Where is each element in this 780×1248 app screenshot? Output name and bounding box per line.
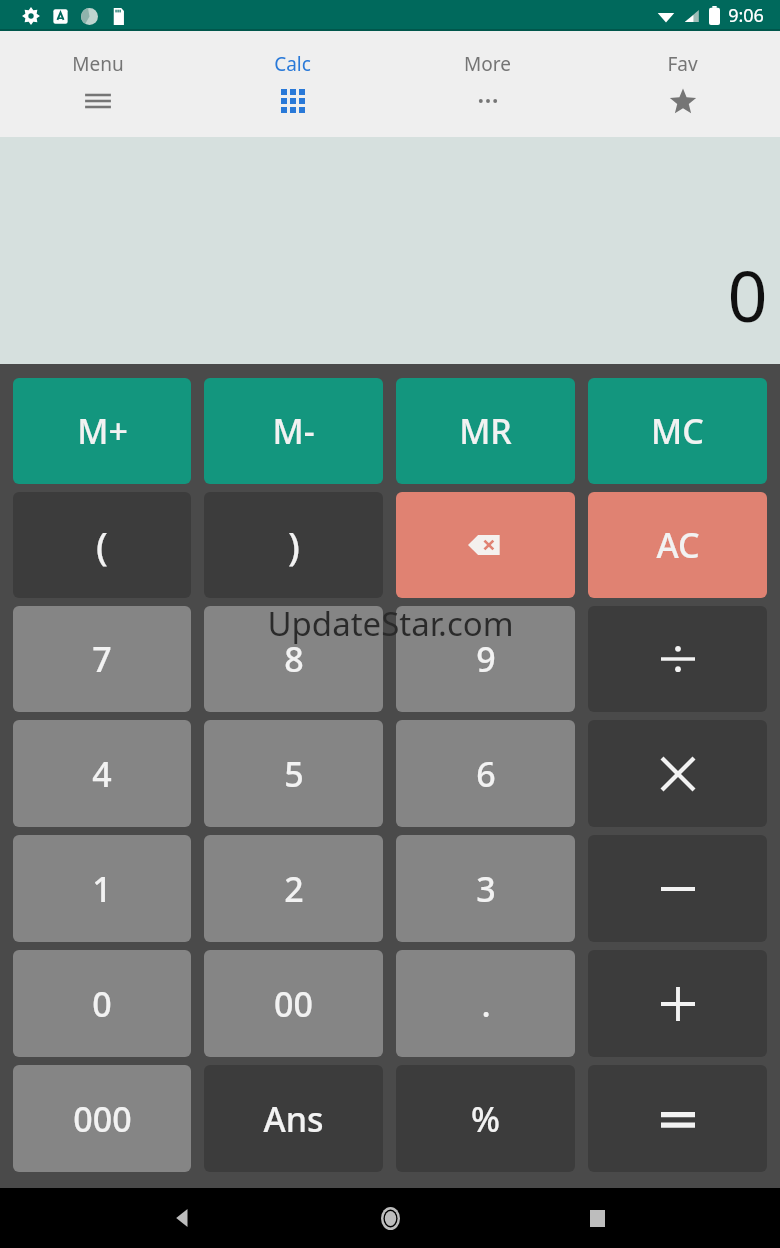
button[interactable]: 1 — [13, 835, 191, 942]
button[interactable]: 6 — [396, 720, 575, 827]
button[interactable]: Backspace — [396, 492, 575, 598]
staticText: MC — [651, 408, 704, 454]
staticText: 9:06 — [728, 3, 764, 28]
staticText: 2 — [284, 866, 304, 912]
button[interactable]: 5 — [204, 720, 383, 827]
button[interactable]: 4 — [13, 720, 191, 827]
button[interactable]: Back — [159, 1194, 207, 1242]
button[interactable]: Ans — [204, 1065, 383, 1172]
staticText: 0 — [92, 981, 112, 1027]
staticText: UpdateStar.com — [267, 601, 514, 646]
button[interactable]: % — [396, 1065, 575, 1172]
button[interactable]: Equals — [588, 1065, 767, 1172]
button[interactable]: MC — [588, 378, 767, 484]
staticText: ) — [288, 519, 300, 571]
staticText: Fav — [667, 51, 698, 77]
staticText: 8 — [284, 636, 304, 682]
staticText: 0 — [727, 247, 768, 342]
staticText: MR — [459, 408, 512, 454]
staticText: 6 — [476, 751, 496, 797]
button[interactable]: 000 — [13, 1065, 191, 1172]
button[interactable]: Fav — [585, 31, 780, 137]
button[interactable]: Minus — [588, 835, 767, 942]
button[interactable]: Plus — [588, 950, 767, 1057]
button[interactable]: ( — [13, 492, 191, 598]
button[interactable]: 8 — [204, 606, 383, 712]
staticText: 7 — [92, 636, 112, 682]
button[interactable]: M+ — [13, 378, 191, 484]
staticText: AC — [656, 522, 700, 568]
button[interactable]: 2 — [204, 835, 383, 942]
button[interactable]: Recents — [573, 1194, 621, 1242]
button[interactable]: . — [396, 950, 575, 1057]
button[interactable]: More — [390, 31, 585, 137]
staticText: % — [471, 1096, 500, 1142]
button[interactable]: M- — [204, 378, 383, 484]
button[interactable]: 0 — [13, 950, 191, 1057]
button[interactable]: Calc — [195, 31, 390, 137]
button[interactable]: MR — [396, 378, 575, 484]
button[interactable]: Menu — [0, 31, 195, 137]
staticText: 000 — [73, 1096, 132, 1142]
staticText: Calc — [274, 51, 311, 77]
button[interactable]: 00 — [204, 950, 383, 1057]
staticText: 5 — [284, 751, 304, 797]
button[interactable]: 9 — [396, 606, 575, 712]
button[interactable]: 3 — [396, 835, 575, 942]
button[interactable]: Divide — [588, 606, 767, 712]
staticText: 1 — [92, 866, 112, 912]
staticText: 3 — [476, 866, 496, 912]
staticText: Ans — [263, 1096, 324, 1142]
button[interactable]: Home — [366, 1194, 414, 1242]
staticText: 9 — [476, 636, 496, 682]
button[interactable]: ) — [204, 492, 383, 598]
button[interactable]: Multiply — [588, 720, 767, 827]
staticText: M- — [272, 408, 315, 454]
staticText: ( — [96, 519, 108, 571]
button[interactable]: AC — [588, 492, 767, 598]
button[interactable]: 7 — [13, 606, 191, 712]
staticText: 00 — [274, 981, 313, 1027]
staticText: 4 — [92, 751, 112, 797]
staticText: More — [464, 51, 511, 77]
staticText: Menu — [72, 51, 124, 77]
staticText: . — [481, 981, 491, 1027]
staticText: M+ — [77, 408, 128, 454]
